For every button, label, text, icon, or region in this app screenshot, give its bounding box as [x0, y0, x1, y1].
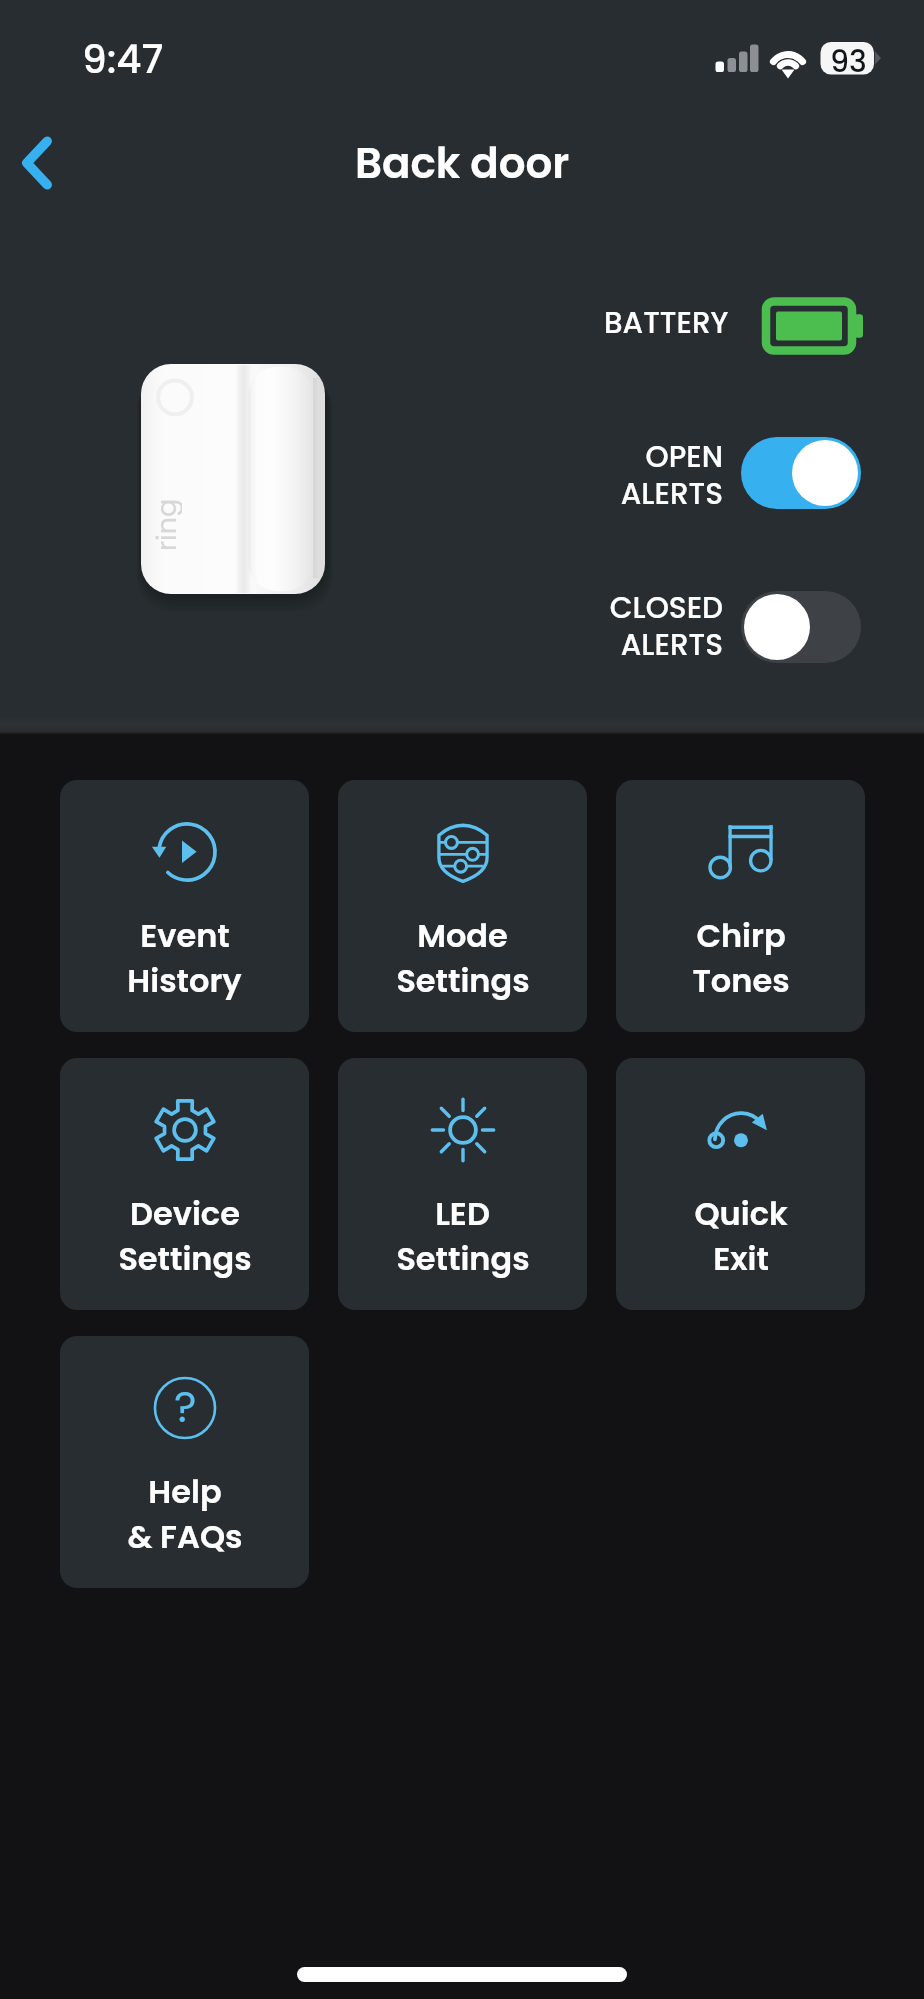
staticText: Settings — [396, 1236, 530, 1281]
button[interactable]: Quick — [616, 1058, 865, 1310]
button[interactable]: Device — [60, 1058, 309, 1310]
staticText: LED — [435, 1191, 490, 1236]
staticText: OPEN ALERTS — [440, 436, 723, 514]
staticText: BATTERY — [604, 302, 729, 343]
staticText: History — [127, 958, 242, 1003]
staticText: Device — [130, 1191, 240, 1236]
staticText: Settings — [118, 1236, 252, 1281]
staticText: Chirp — [696, 913, 786, 958]
staticText: Settings — [396, 958, 530, 1003]
staticText: Back door — [355, 134, 570, 193]
staticText: Help — [148, 1469, 222, 1514]
staticText: ring — [148, 498, 182, 551]
button[interactable]: CLOSED ALERTS — [440, 587, 860, 673]
staticText: 93 — [830, 41, 867, 83]
button[interactable]: LED — [338, 1058, 587, 1310]
staticText: Mode — [417, 913, 508, 958]
staticText: Exit — [713, 1236, 769, 1281]
button[interactable]: Alerts off — [741, 591, 861, 663]
staticText: Tones — [692, 958, 790, 1003]
staticText: CLOSED ALERTS — [440, 587, 723, 665]
button[interactable]: Mode — [338, 780, 587, 1032]
button[interactable]: ? — [60, 1336, 309, 1588]
button[interactable]: Event — [60, 780, 309, 1032]
button[interactable]: OPEN ALERTS — [440, 436, 860, 522]
button[interactable]: Chirp — [616, 780, 865, 1032]
button[interactable]: Alerts on — [741, 437, 861, 509]
staticText: & FAQs — [127, 1514, 243, 1559]
staticText: 9:47 — [82, 32, 164, 87]
staticText: Event — [140, 913, 230, 958]
button[interactable]: Back — [0, 119, 74, 207]
staticText: ? — [174, 1377, 197, 1437]
staticText: Quick — [694, 1191, 788, 1236]
